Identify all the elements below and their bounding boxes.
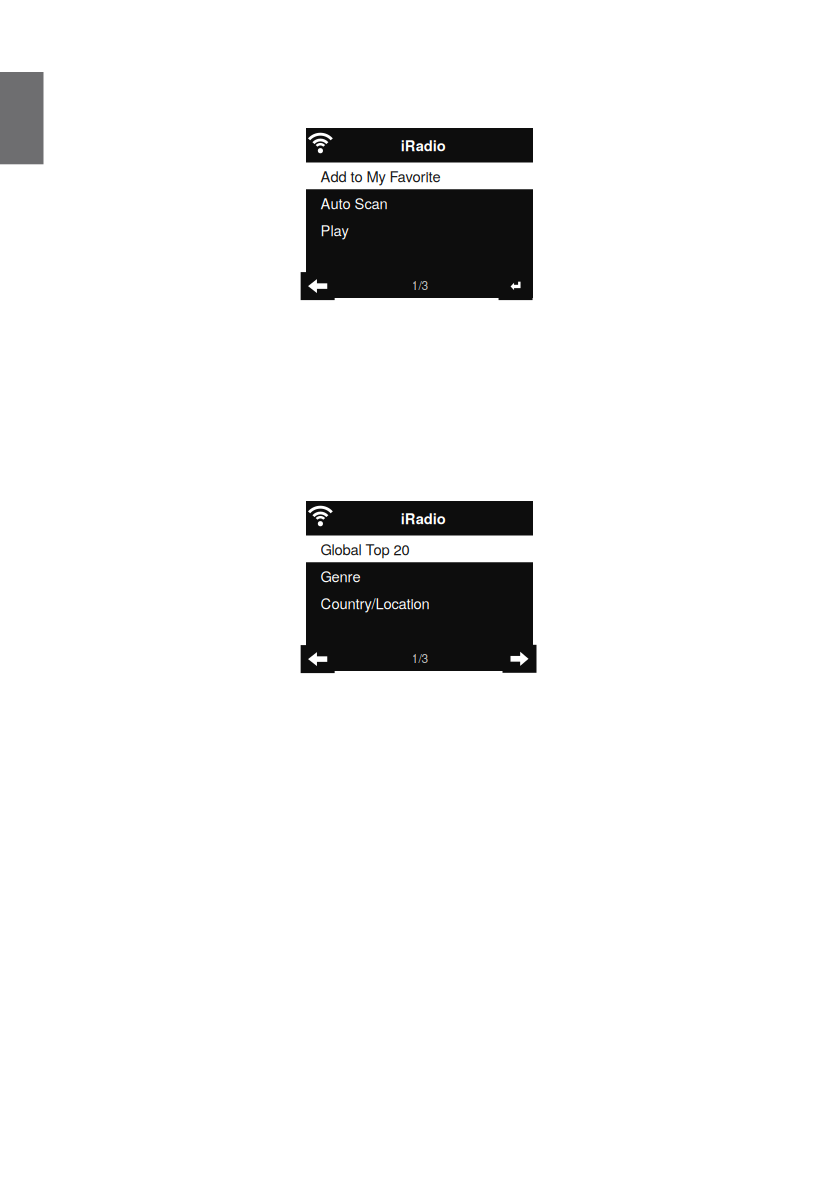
button[interactable]: Back <box>301 272 335 300</box>
button[interactable]: Play <box>306 216 533 243</box>
staticText: 1/3 <box>411 649 428 666</box>
button[interactable]: Select <box>499 272 533 300</box>
staticText: iRadio <box>401 135 446 156</box>
staticText: iRadio <box>401 508 446 529</box>
button[interactable]: Country/Location <box>306 589 533 616</box>
staticText: Auto Scan <box>320 192 387 213</box>
staticText: Play <box>320 219 348 240</box>
button[interactable]: Back <box>301 645 335 673</box>
staticText: Country/Location <box>320 592 429 613</box>
button[interactable]: Add to My Favorite <box>306 162 533 189</box>
button[interactable]: Genre <box>306 562 533 589</box>
staticText: Genre <box>320 565 360 586</box>
button[interactable]: Next page <box>502 645 536 673</box>
staticText: Global Top 20 <box>320 538 409 559</box>
staticText: Add to My Favorite <box>320 165 440 186</box>
staticText: 1/3 <box>411 276 428 293</box>
button[interactable]: Global Top 20 <box>306 535 533 562</box>
button[interactable]: Auto Scan <box>306 189 533 216</box>
